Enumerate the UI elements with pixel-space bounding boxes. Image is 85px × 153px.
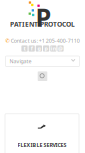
staticText: p: [45, 45, 48, 52]
staticText: f: [31, 45, 33, 52]
button[interactable]: Navigate: [5, 56, 79, 66]
staticText: PATIENT PROTOCOL: [10, 20, 75, 29]
staticText: t: [23, 45, 25, 52]
staticText: in: [51, 45, 56, 52]
button[interactable]: Facebook: [29, 45, 35, 52]
button[interactable]: Twitter: [21, 45, 28, 52]
staticText: ✆: [5, 38, 9, 44]
staticText: g: [37, 45, 40, 52]
button[interactable]: Pinterest: [43, 45, 49, 52]
button[interactable]: Email: [57, 45, 64, 52]
button[interactable]: Search: [38, 71, 47, 81]
staticText: FLEXIBLE SERVICES: [17, 141, 66, 148]
button[interactable]: Google Plus: [36, 45, 42, 52]
staticText: @: [58, 45, 63, 52]
staticText: Contact us: +1 205-400-7110: [11, 37, 80, 44]
staticText: Navigate: [9, 58, 31, 65]
staticText: P: [35, 0, 51, 34]
button[interactable]: LinkedIn: [50, 45, 56, 52]
